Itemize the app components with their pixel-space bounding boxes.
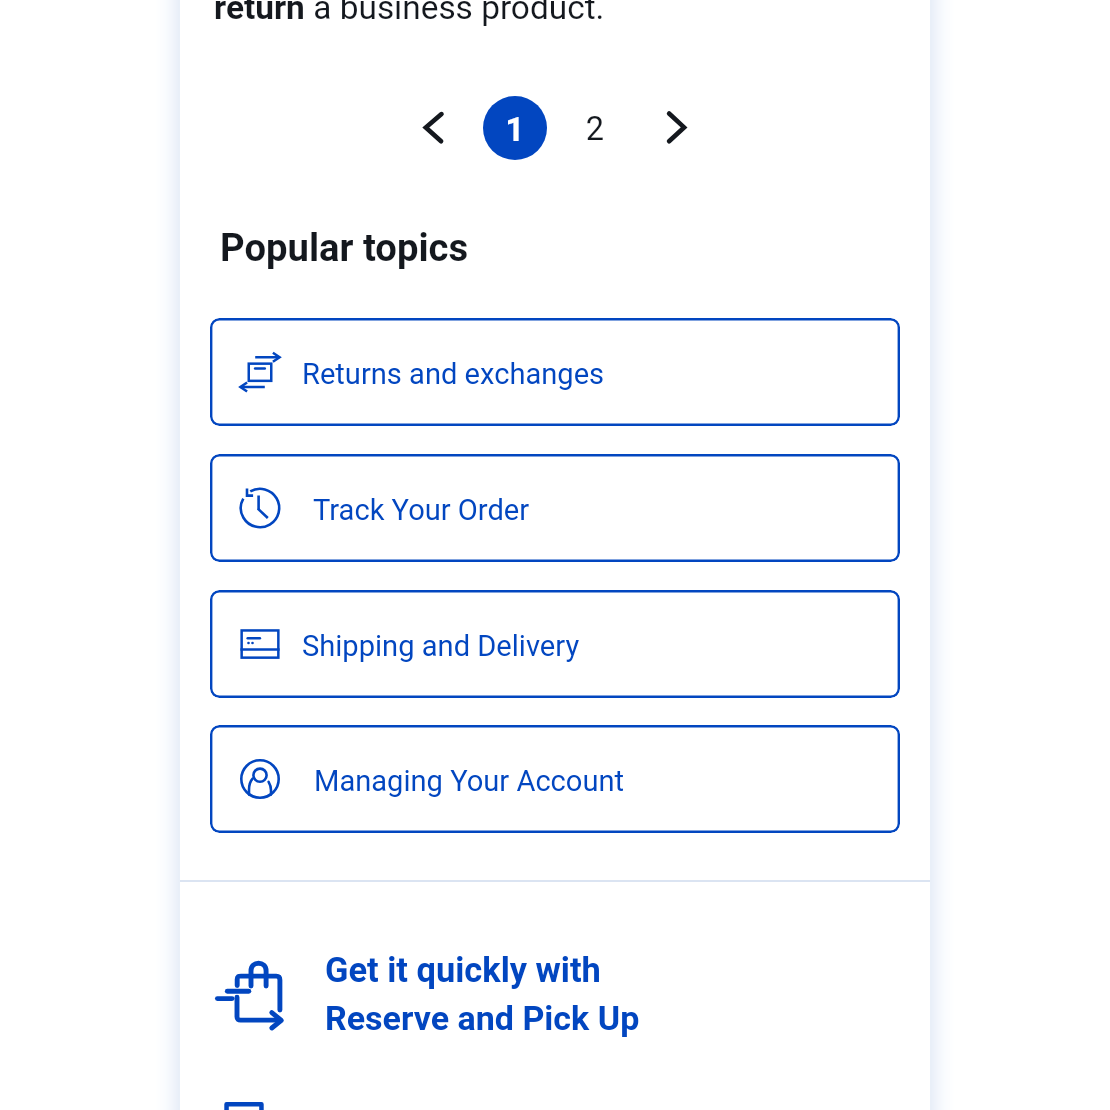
staticText: Get it quickly with — [325, 950, 601, 990]
button[interactable]: Track Your Order — [210, 454, 900, 562]
button[interactable]: 2 — [565, 97, 625, 157]
staticText: Track Your Order — [313, 493, 530, 527]
staticText: return — [214, 0, 305, 27]
button[interactable]: Previous page — [403, 97, 463, 157]
button[interactable]: Returns and exchanges — [210, 318, 900, 426]
staticText: 1 — [483, 110, 547, 149]
button[interactable]: Managing Your Account — [210, 725, 900, 833]
staticText: Popular topics — [220, 226, 469, 271]
button[interactable]: Next page — [647, 97, 707, 157]
staticText: Managing Your Account — [314, 764, 625, 798]
button[interactable]: Get it quickly with — [200, 930, 720, 1056]
staticText: Reserve and Pick Up — [325, 998, 640, 1038]
staticText: 2 — [565, 110, 625, 148]
button[interactable]: 1 — [483, 96, 547, 160]
staticText: Shipping and Delivery — [302, 629, 580, 663]
staticText: a business product. — [305, 0, 605, 27]
staticText: Returns and exchanges — [302, 357, 605, 391]
button[interactable]: Shipping and Delivery — [210, 590, 900, 698]
